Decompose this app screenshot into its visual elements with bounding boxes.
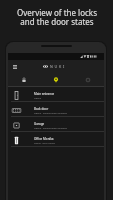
staticText: Offline · Programmed: unlocked <box>34 127 67 130</box>
staticText: Offline · Programmed: unlocked <box>34 112 67 115</box>
staticText: Main entrance <box>34 92 55 96</box>
staticText: Online · Door closed <box>34 142 55 145</box>
staticText: Back door <box>34 107 49 111</box>
staticText: Office Monika <box>34 137 54 141</box>
staticText: Offline <box>34 97 41 100</box>
button[interactable]: Settings <box>72 73 104 87</box>
button[interactable]: Main entrance <box>8 87 104 102</box>
button[interactable]: Users <box>40 73 72 87</box>
staticText: NUKI <box>50 64 67 69</box>
button[interactable]: Garage <box>8 117 104 132</box>
button[interactable]: Office Monika <box>8 132 104 147</box>
staticText: Garage <box>34 122 45 126</box>
button[interactable]: Open navigation menu <box>10 62 19 71</box>
staticText: Overview of the locks and the door state… <box>17 7 97 28</box>
button[interactable]: Back door <box>8 102 104 117</box>
button[interactable]: Smart locks <box>8 73 40 87</box>
